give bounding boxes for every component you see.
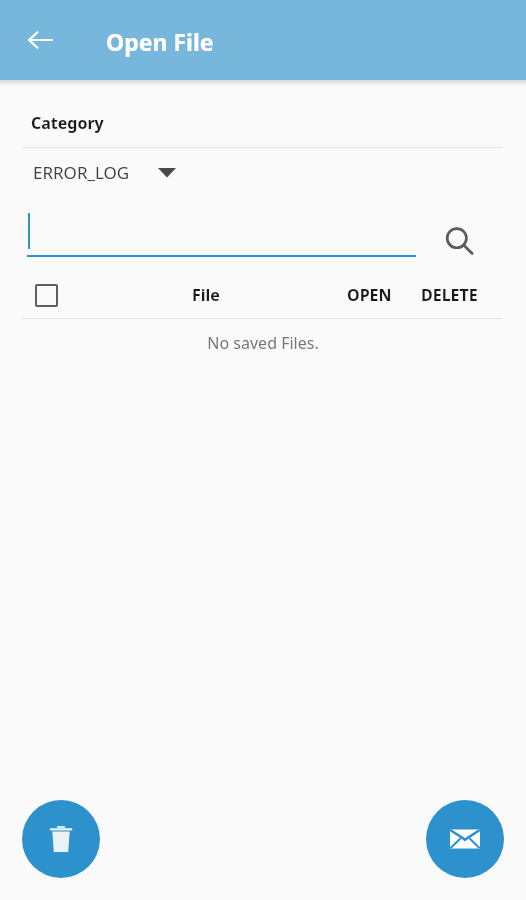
staticText: Open File xyxy=(106,26,214,57)
staticText: OPEN xyxy=(347,284,392,306)
button[interactable]: Back xyxy=(14,14,66,66)
staticText: ERROR_LOG xyxy=(33,161,130,184)
button[interactable] xyxy=(27,209,416,257)
staticText: Category xyxy=(31,112,104,134)
button[interactable]: OPEN xyxy=(347,284,392,306)
button[interactable]: Select all files xyxy=(22,272,70,318)
staticText: No saved Files. xyxy=(207,332,319,354)
button[interactable]: DELETE xyxy=(421,284,478,306)
button[interactable]: Send file by email xyxy=(426,800,504,878)
staticText: DELETE xyxy=(421,284,478,306)
button[interactable]: Search xyxy=(432,214,488,270)
staticText: File xyxy=(192,284,220,306)
button[interactable]: Delete selected files xyxy=(22,800,100,878)
button[interactable]: ERROR_LOG xyxy=(0,148,526,196)
